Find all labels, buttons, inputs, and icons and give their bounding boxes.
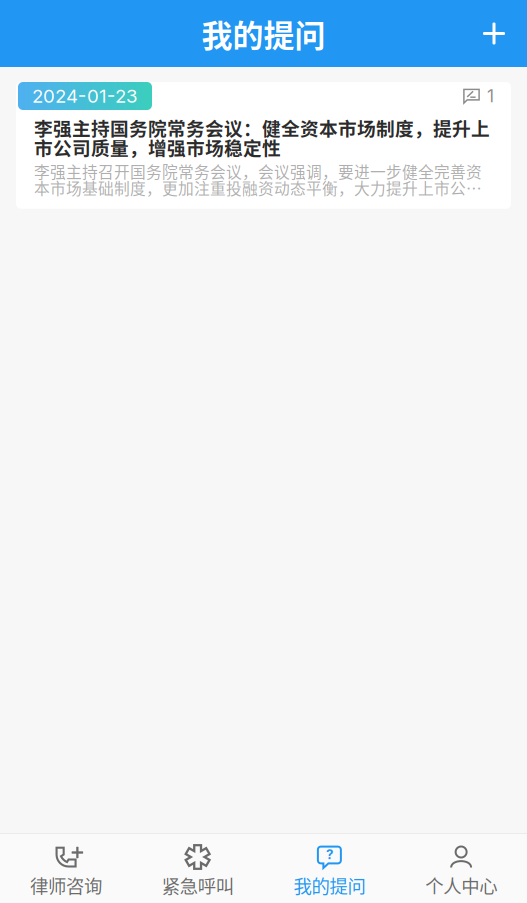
button[interactable]: 律师咨询 xyxy=(0,834,132,903)
staticText: 律师咨询 xyxy=(30,872,102,899)
button[interactable]: 2024-01-23 xyxy=(16,82,511,209)
button[interactable]: ? xyxy=(263,834,395,903)
button[interactable]: 新建提问 xyxy=(472,11,516,55)
staticText: 李强主持国务院常务会议：健全资本市场制度，提升上市公司质量，增强市场稳定性 xyxy=(34,118,490,157)
button[interactable]: 个人中心 xyxy=(395,834,527,903)
staticText: 我的提问 xyxy=(201,11,325,56)
button[interactable]: 紧急呼叫 xyxy=(132,834,264,903)
staticText: 1 xyxy=(487,85,494,106)
staticText: 紧急呼叫 xyxy=(162,872,234,899)
staticText: 李强主持召开国务院常务会议，会议强调，要进一步健全完善资本市场基础制度，更加注重… xyxy=(34,163,482,196)
staticText: ? xyxy=(326,846,333,862)
staticText: 我的提问 xyxy=(293,872,365,899)
staticText: 2024-01-23 xyxy=(32,85,138,107)
staticText: 个人中心 xyxy=(425,872,497,899)
